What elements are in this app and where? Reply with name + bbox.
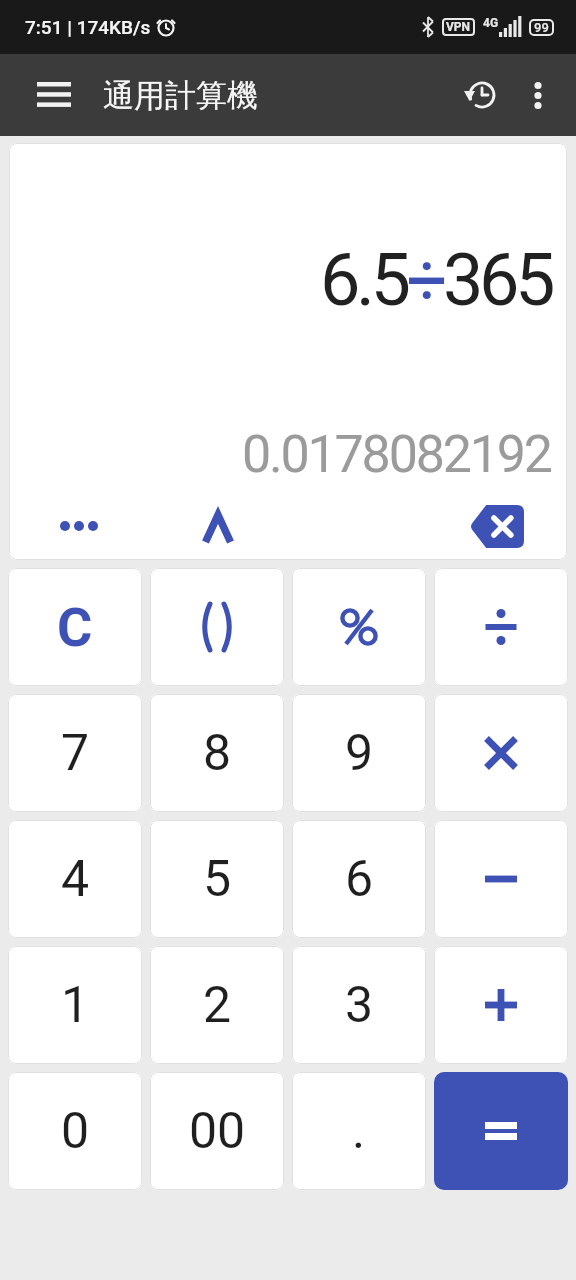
button[interactable]: [434, 568, 568, 686]
button[interactable]: 0: [8, 1072, 142, 1190]
staticText: .: [352, 1102, 366, 1161]
button[interactable]: 3: [292, 946, 426, 1064]
staticText: 9: [345, 724, 374, 783]
button[interactable]: [434, 946, 568, 1064]
button[interactable]: [434, 820, 568, 938]
staticText: 7:51 | 174KB/s: [25, 16, 151, 38]
staticText: 3: [345, 976, 374, 1035]
button[interactable]: .: [292, 1072, 426, 1190]
button[interactable]: 6: [292, 820, 426, 938]
staticText: 4G: [483, 16, 499, 30]
button[interactable]: [148, 500, 287, 552]
button[interactable]: [434, 694, 568, 812]
staticText: 6.5÷365: [320, 238, 551, 322]
button[interactable]: 7: [8, 694, 142, 812]
staticText: 2: [203, 976, 232, 1035]
staticText: 通用計算機: [103, 76, 258, 115]
button[interactable]: 4: [8, 820, 142, 938]
button[interactable]: [292, 568, 426, 686]
button[interactable]: [9, 500, 148, 552]
button[interactable]: 1: [8, 946, 142, 1064]
button[interactable]: [518, 75, 558, 115]
staticText: 7: [61, 724, 90, 783]
staticText: 00: [189, 1102, 246, 1161]
button[interactable]: 00: [150, 1072, 284, 1190]
staticText: C: [57, 596, 93, 659]
button[interactable]: [30, 71, 78, 119]
staticText: 4: [61, 850, 90, 909]
button[interactable]: C: [8, 568, 142, 686]
staticText: 99: [534, 20, 549, 35]
button[interactable]: [150, 568, 284, 686]
staticText: 0: [61, 1102, 90, 1161]
staticText: 0.0178082192: [242, 424, 551, 485]
button[interactable]: 8: [150, 694, 284, 812]
button[interactable]: 2: [150, 946, 284, 1064]
button[interactable]: [427, 500, 567, 552]
staticText: 5: [203, 850, 232, 909]
button[interactable]: 9: [292, 694, 426, 812]
staticText: 1: [61, 976, 90, 1035]
button[interactable]: [434, 1072, 568, 1190]
staticText: 6: [345, 850, 374, 909]
staticText: VPN: [446, 20, 471, 34]
button[interactable]: 5: [150, 820, 284, 938]
staticText: 8: [203, 724, 232, 783]
button[interactable]: [457, 72, 503, 118]
